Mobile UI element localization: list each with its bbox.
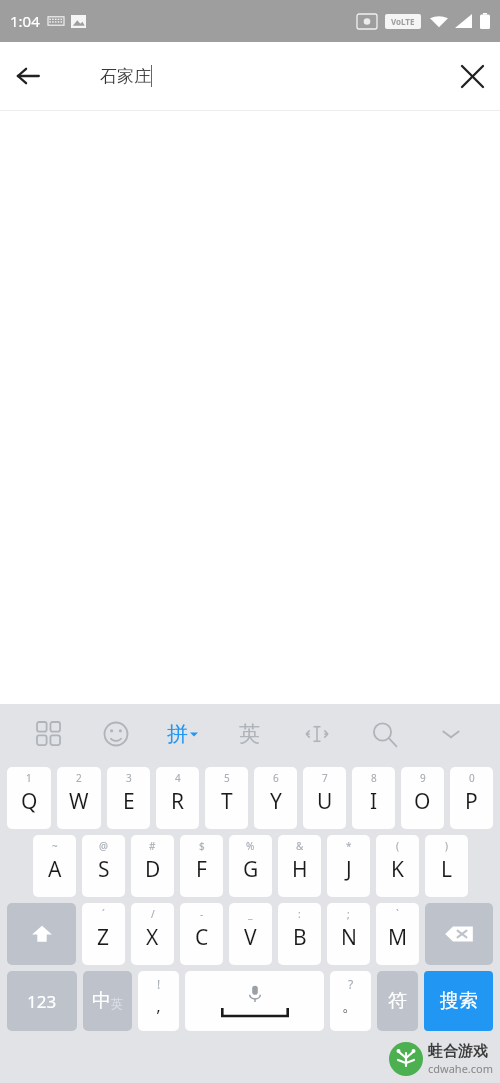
staticText: _ [248,907,253,921]
staticText: 。 [342,995,359,1016]
button[interactable]: / [131,903,174,965]
button[interactable]: 0 [450,767,493,829]
staticText: & [296,839,304,853]
staticText: F [196,855,207,884]
staticText: 2 [76,771,82,785]
button[interactable]: & [278,835,321,897]
button[interactable]: 5 [205,767,248,829]
button[interactable]: # [131,835,174,897]
button[interactable]: 6 [254,767,297,829]
staticText: # [149,839,156,853]
staticText: 英 [239,721,260,747]
button[interactable]: Clear [444,48,500,104]
button[interactable]: Delete [425,903,493,965]
button[interactable]: ) [425,835,468,897]
staticText: ~ [52,839,58,853]
staticText: ? [348,976,354,992]
button[interactable]: ( [376,835,419,897]
button[interactable]: Hide keyboard [417,704,484,764]
button[interactable]: Grid [16,704,82,764]
staticText: ! [157,976,161,992]
button[interactable]: - [180,903,223,965]
button[interactable]: 9 [401,767,444,829]
button[interactable]: 拼 [149,704,216,764]
staticText: $ [199,839,205,853]
button[interactable]: 中 [83,971,132,1031]
staticText: 9 [420,771,426,785]
button[interactable]: Cursor [283,704,350,764]
staticText: 6 [273,771,279,785]
staticText: Y [270,787,282,816]
staticText: M [388,923,408,952]
staticText: L [441,855,453,884]
staticText: 4 [175,771,181,785]
staticText: ` [396,907,399,921]
staticText: 123 [27,990,57,1013]
staticText: B [293,923,307,952]
staticText: G [243,855,259,884]
button[interactable]: 8 [352,767,395,829]
staticText: * [346,839,352,853]
button[interactable]: % [229,835,272,897]
button[interactable]: 3 [107,767,150,829]
button[interactable]: ` [376,903,419,965]
staticText: VoLTE [391,16,415,27]
button[interactable]: : [278,903,321,965]
button[interactable]: 2 [57,767,101,829]
button[interactable]: 符 [377,971,418,1031]
staticText: W [69,787,89,816]
button[interactable]: 英 [216,704,283,764]
staticText: E [123,787,135,816]
staticText: J [346,855,352,884]
button[interactable]: ~ [33,835,76,897]
staticText: 搜索 [440,989,478,1013]
button[interactable]: Shift [7,903,76,965]
button[interactable]: Emoji [82,704,149,764]
staticText: ( [396,839,399,853]
button[interactable]: 搜索 [424,971,493,1031]
staticText: ) [445,839,448,853]
staticText: % [246,839,255,853]
staticText: H [292,855,308,884]
button[interactable]: Space [185,971,324,1031]
staticText: 蛙合游戏 [428,1042,488,1061]
staticText: ; [347,907,350,921]
button[interactable]: 7 [303,767,346,829]
staticText: 石家庄 [100,66,151,87]
button[interactable]: 123 [7,971,77,1031]
button[interactable]: 1 [7,767,51,829]
staticText: 0 [469,771,475,785]
staticText: I [370,787,378,816]
button[interactable]: @ [82,835,125,897]
staticText: ´ [102,907,105,921]
staticText: 中 [92,989,111,1013]
button[interactable]: 4 [156,767,199,829]
staticText: 拼 [167,721,188,747]
staticText: , [156,994,161,1017]
staticText: V [244,923,257,952]
staticText: - [200,907,204,921]
staticText: D [145,855,161,884]
staticText: : [298,907,301,921]
button[interactable]: ; [327,903,370,965]
staticText: 1:04 [10,11,40,31]
staticText: 8 [371,771,377,785]
staticText: R [171,787,185,816]
button[interactable]: _ [229,903,272,965]
staticText: K [391,855,404,884]
staticText: 5 [224,771,230,785]
staticText: 1 [26,771,32,785]
staticText: / [151,907,155,921]
button[interactable]: Search [350,704,417,764]
button[interactable]: * [327,835,370,897]
button[interactable]: Back [0,48,56,104]
button[interactable]: ´ [82,903,125,965]
button[interactable]: ! [138,971,179,1031]
button[interactable]: ? [330,971,371,1031]
button[interactable]: $ [180,835,223,897]
staticText: A [48,855,62,884]
staticText: C [195,923,209,952]
staticText: X [146,923,159,952]
staticText: cdwahe.com [428,1061,494,1076]
staticText: 符 [388,989,407,1013]
